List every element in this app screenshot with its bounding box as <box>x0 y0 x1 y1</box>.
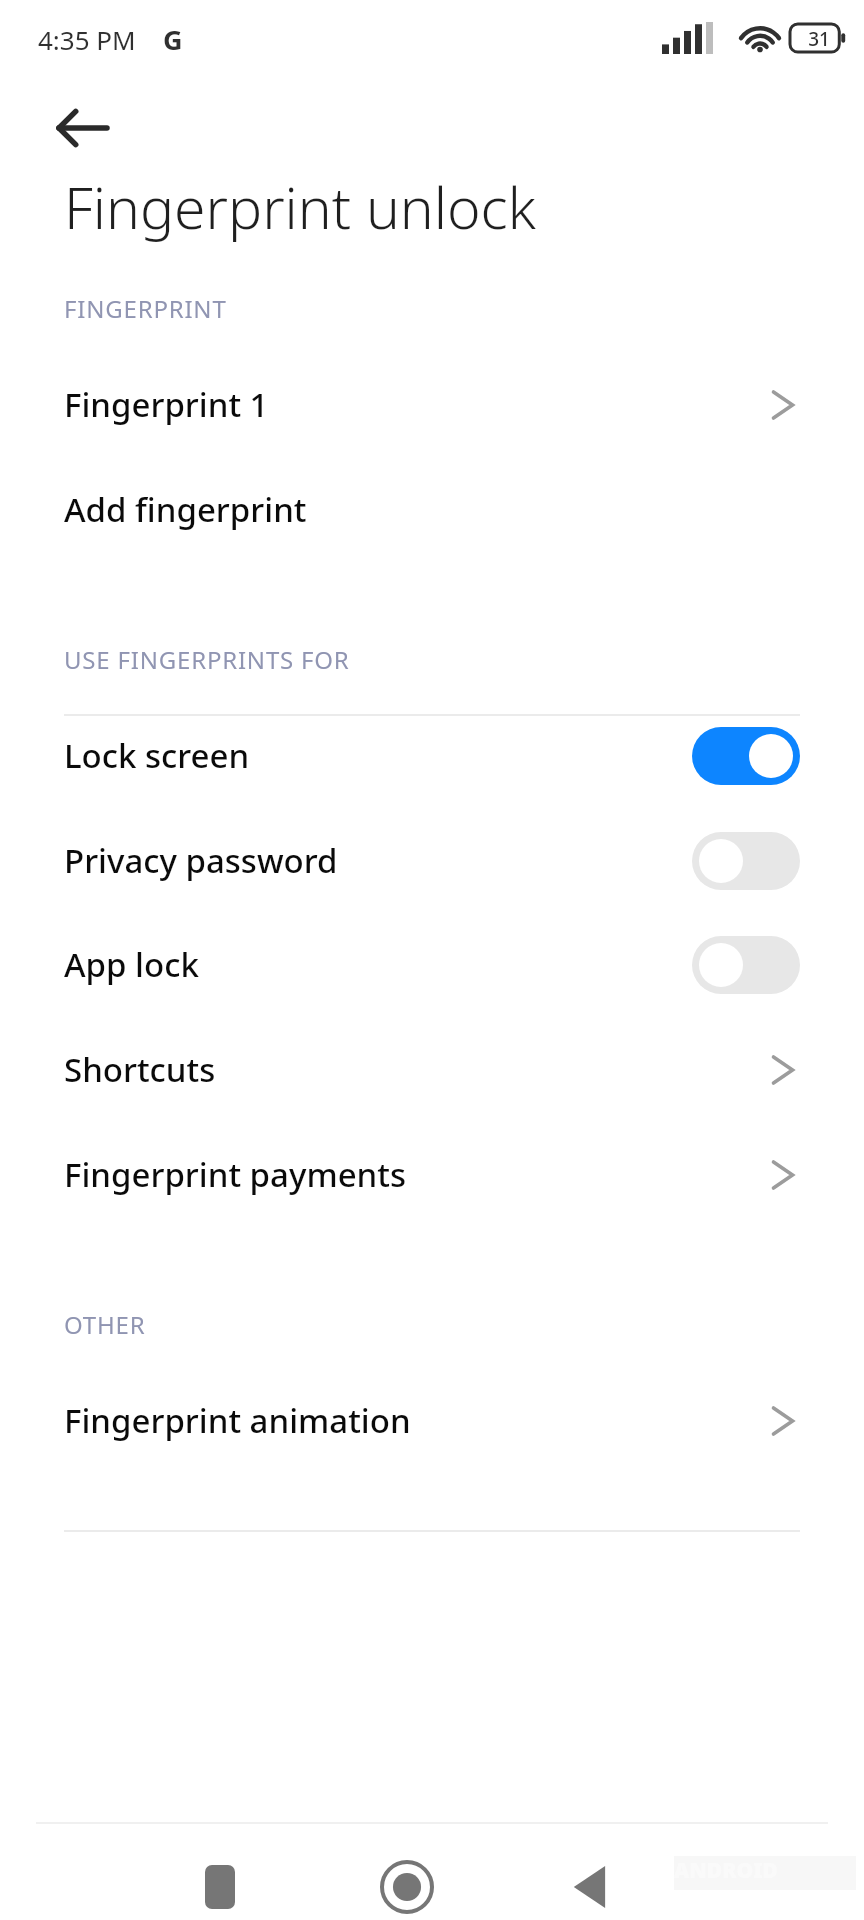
staticText: Privacy password <box>64 838 692 883</box>
staticText: Add fingerprint <box>64 487 800 532</box>
button[interactable]: Back <box>38 86 128 170</box>
button[interactable]: Privacy password <box>0 808 864 913</box>
button[interactable]: App lock <box>692 936 800 994</box>
staticText: USE FINGERPRINTS FOR <box>64 643 350 676</box>
staticText: 4:35 PM <box>38 22 136 57</box>
staticText: G <box>163 21 183 58</box>
staticText: Lock screen <box>64 733 692 778</box>
button[interactable]: Shortcuts <box>0 1017 864 1122</box>
button[interactable]: Home <box>372 1852 442 1920</box>
staticText: 31 <box>798 26 840 52</box>
staticText: Shortcuts <box>64 1047 766 1092</box>
button[interactable]: Add fingerprint <box>0 457 864 562</box>
button[interactable]: Fingerprint payments <box>0 1122 864 1227</box>
button[interactable]: Back <box>558 1855 622 1919</box>
staticText: OTHER <box>64 1308 146 1341</box>
button[interactable]: Recents <box>190 1857 250 1917</box>
staticText: Fingerprint animation <box>64 1398 766 1443</box>
button[interactable]: Fingerprint animation <box>0 1368 864 1473</box>
button[interactable]: Lock screen <box>692 727 800 785</box>
staticText: FINGERPRINT <box>64 292 227 325</box>
button[interactable]: Lock screen <box>0 703 864 808</box>
staticText: Fingerprint payments <box>64 1152 766 1197</box>
staticText: Fingerprint unlock <box>64 168 536 246</box>
button[interactable]: Fingerprint 1 <box>0 352 864 457</box>
button[interactable]: Privacy password <box>692 832 800 890</box>
staticText: Fingerprint 1 <box>64 382 766 427</box>
button[interactable]: App lock <box>0 912 864 1017</box>
staticText: App lock <box>64 942 692 987</box>
